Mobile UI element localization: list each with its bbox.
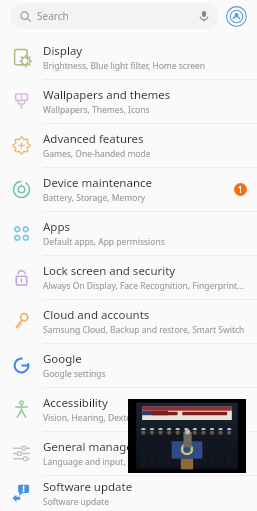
- button[interactable]: Voice search: [197, 9, 211, 23]
- staticText: Google: [43, 351, 82, 367]
- staticText: Lock screen and security: [43, 263, 176, 279]
- button[interactable]: Apps: [0, 212, 257, 255]
- button[interactable]: Device maintenance: [0, 168, 257, 211]
- button[interactable]: Search: [10, 3, 219, 29]
- button[interactable]: Advanced features: [0, 124, 257, 167]
- staticText: Wallpapers, Themes, Icons: [43, 104, 150, 116]
- button[interactable]: Lock screen and security: [0, 256, 257, 299]
- staticText: Brightness, Blue light filter, Home scre…: [43, 60, 206, 72]
- button[interactable]: Account: [225, 5, 247, 27]
- button[interactable]: Cloud and accounts: [0, 300, 257, 343]
- staticText: Battery, Storage, Memory: [43, 192, 146, 204]
- staticText: Display: [43, 43, 83, 59]
- button[interactable]: Software update: [0, 476, 257, 511]
- staticText: Google settings: [43, 368, 106, 380]
- staticText: Vision, Hearing, Dexterity and interacti…: [43, 412, 208, 424]
- staticText: Language and input, Date and time, Reset: [43, 456, 211, 468]
- staticText: General management: [43, 439, 162, 455]
- staticText: Wallpapers and themes: [43, 87, 171, 103]
- staticText: Default apps, App permissions: [43, 236, 165, 248]
- staticText: Samsung Cloud, Backup and restore, Smart…: [43, 324, 245, 336]
- staticText: Apps: [43, 219, 71, 235]
- staticText: 1: [238, 184, 243, 195]
- button[interactable]: General management: [0, 432, 257, 475]
- staticText: Search: [37, 9, 69, 23]
- staticText: Software update: [43, 479, 133, 495]
- button[interactable]: Picture in picture video: [128, 399, 246, 473]
- staticText: Games, One-handed mode: [43, 148, 151, 160]
- staticText: Cloud and accounts: [43, 307, 150, 323]
- button[interactable]: Google: [0, 344, 257, 387]
- staticText: Device maintenance: [43, 175, 153, 191]
- button[interactable]: Display: [0, 36, 257, 79]
- button[interactable]: Accessibility: [0, 388, 257, 431]
- staticText: Accessibility: [43, 395, 108, 411]
- staticText: Always On Display, Face Recognition, Fin…: [43, 280, 247, 292]
- button[interactable]: Wallpapers and themes: [0, 80, 257, 123]
- staticText: Software update: [43, 496, 109, 508]
- staticText: Advanced features: [43, 131, 144, 147]
